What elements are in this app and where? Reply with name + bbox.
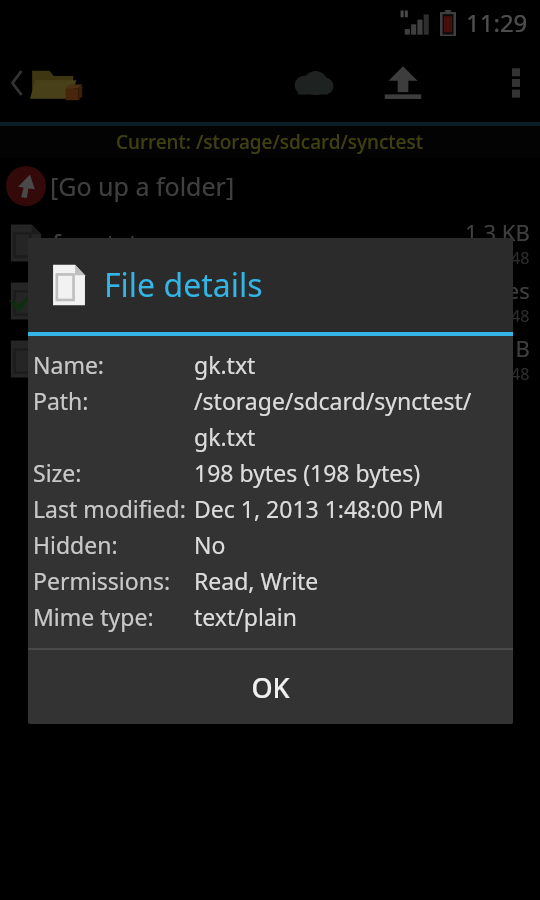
staticText: notes.txt bbox=[52, 284, 431, 318]
button[interactable]: gk.txt bbox=[0, 330, 540, 388]
staticText: Current: /storage/sdcard/synctest bbox=[116, 129, 424, 155]
staticText: text/plain bbox=[194, 601, 297, 632]
staticText: Permissions: bbox=[33, 565, 171, 596]
button[interactable]: notes.txt bbox=[0, 272, 540, 330]
staticText: Size: bbox=[33, 457, 82, 488]
staticText: 11:29 bbox=[466, 6, 528, 39]
staticText: 1.3 KB bbox=[465, 217, 530, 247]
staticText: File details bbox=[104, 263, 263, 307]
staticText: 48 bbox=[511, 305, 530, 327]
staticText: Read, Write bbox=[194, 565, 319, 596]
staticText: /storage/sdcard/synctest/ bbox=[194, 385, 472, 416]
staticText: gk.txt bbox=[52, 342, 472, 376]
staticText: Name: bbox=[33, 349, 105, 380]
button[interactable]: Upload bbox=[372, 52, 434, 114]
staticText: freq.txt bbox=[52, 226, 465, 260]
button[interactable]: [Go up a folder] bbox=[0, 158, 540, 214]
button[interactable]: More options bbox=[492, 53, 540, 113]
staticText: 198 bytes (198 bytes) bbox=[194, 457, 421, 488]
button[interactable]: Cloud bbox=[276, 56, 348, 110]
staticText: 198 B bbox=[472, 333, 530, 363]
staticText: 842 bytes bbox=[431, 275, 530, 305]
staticText: Dec 1, 2013 1:48:00 PM bbox=[194, 493, 444, 524]
staticText: gk.txt bbox=[194, 421, 256, 452]
staticText: 48 bbox=[511, 247, 530, 269]
button[interactable]: OK bbox=[28, 650, 513, 724]
staticText: Path: bbox=[33, 385, 89, 416]
staticText: Last modified: bbox=[33, 493, 186, 524]
staticText: [Go up a folder] bbox=[50, 169, 235, 203]
staticText: Mime type: bbox=[33, 601, 154, 632]
button[interactable]: Navigate up bbox=[0, 53, 92, 113]
staticText: Hidden: bbox=[33, 529, 118, 560]
staticText: 48 bbox=[511, 363, 530, 385]
staticText: gk.txt bbox=[194, 349, 256, 380]
button[interactable]: freq.txt bbox=[0, 214, 540, 272]
staticText: No bbox=[194, 529, 226, 560]
staticText: OK bbox=[251, 669, 290, 706]
